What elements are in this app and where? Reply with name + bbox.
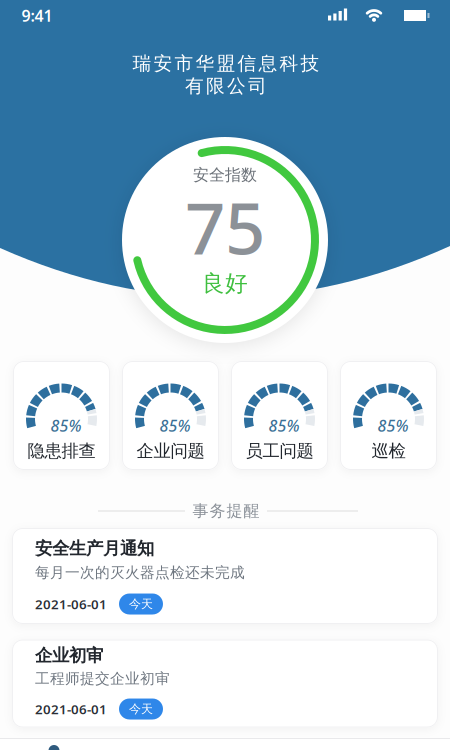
button[interactable]: 85% — [122, 361, 219, 470]
staticText: 巡检 — [371, 440, 405, 462]
staticText: 85% — [268, 415, 299, 436]
staticText: 今天 — [129, 702, 153, 716]
button[interactable]: 首页 — [48, 745, 59, 750]
staticText: 85% — [159, 415, 190, 436]
staticText: 工程师提交企业初审 — [35, 669, 170, 687]
staticText: 安全指数 — [193, 165, 257, 185]
button[interactable]: 85% — [340, 361, 437, 470]
staticText: 隐患排查 — [27, 440, 95, 462]
button[interactable]: 85% — [231, 361, 328, 470]
staticText: 85% — [377, 415, 408, 436]
button[interactable]: 安全生产月通知 — [12, 528, 438, 624]
staticText: 2021-06-01 — [35, 595, 107, 613]
staticText: 85% — [50, 415, 81, 436]
staticText: 企业初审 — [35, 645, 103, 666]
button[interactable]: 企业初审 — [12, 639, 438, 727]
staticText: 每月一次的灭火器点检还未完成 — [35, 563, 245, 581]
staticText: 有限公司 — [185, 74, 267, 97]
staticText: 安全生产月通知 — [35, 538, 154, 559]
staticText: 企业问题 — [136, 440, 204, 462]
staticText: 瑞安市华盟信息科技 — [132, 52, 319, 75]
staticText: 2021-06-01 — [35, 700, 107, 718]
staticText: 良好 — [202, 270, 248, 297]
button[interactable]: 85% — [13, 361, 110, 470]
staticText: 75 — [185, 180, 265, 274]
staticText: 9:41 — [21, 5, 52, 26]
staticText: 今天 — [129, 597, 153, 611]
staticText: 员工问题 — [245, 440, 313, 462]
staticText: 事务提醒 — [192, 501, 259, 521]
